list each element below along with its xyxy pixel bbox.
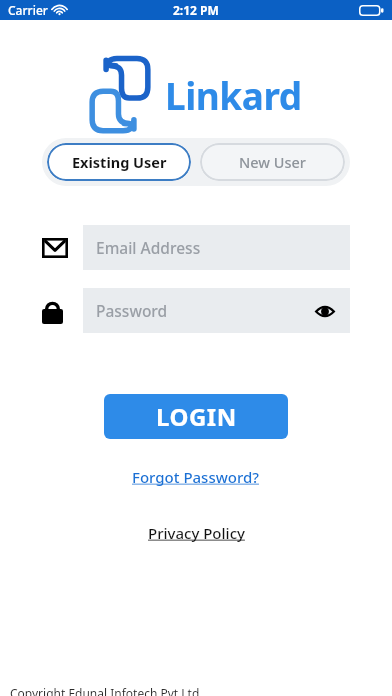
button[interactable]: New User <box>200 143 345 181</box>
staticText: 2:12 PM <box>173 2 219 18</box>
staticText: Forgot Password? <box>132 467 260 487</box>
staticText: Linkard <box>165 70 302 120</box>
button[interactable]: Privacy Policy <box>142 520 251 546</box>
staticText: Privacy Policy <box>148 523 245 543</box>
staticText: Copyright Edunal Infotech Pvt Ltd <box>10 685 200 696</box>
button[interactable]: Password <box>42 288 350 333</box>
button[interactable]: Email Address <box>42 225 350 270</box>
staticText: New User <box>239 152 306 172</box>
button[interactable]: Existing User <box>47 143 191 181</box>
staticText: Existing User <box>72 152 167 172</box>
staticText: Carrier <box>8 2 48 18</box>
button[interactable]: Forgot Password? <box>126 464 266 490</box>
staticText: Email Address <box>96 237 201 258</box>
staticText: Password <box>96 300 168 321</box>
button[interactable]: Show password <box>312 298 338 324</box>
button[interactable]: LOGIN <box>104 394 288 439</box>
staticText: LOGIN <box>156 400 237 433</box>
